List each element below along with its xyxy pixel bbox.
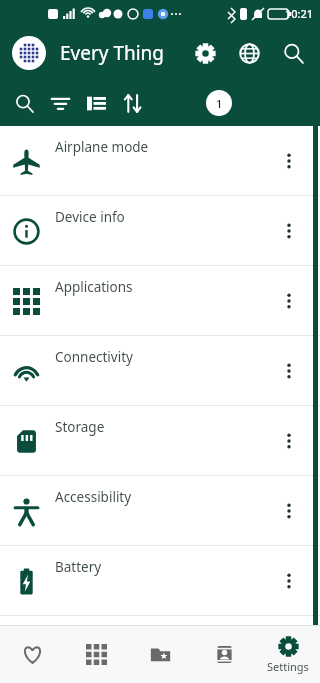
staticText: Battery <box>55 558 102 576</box>
staticText: Connectivity <box>55 348 133 366</box>
button[interactable]: Language <box>232 36 266 70</box>
staticText: Every Thing <box>60 40 165 66</box>
button[interactable]: Connectivity <box>0 336 320 406</box>
button[interactable]: Settings <box>256 626 320 683</box>
button[interactable]: Accessibility <box>0 476 320 546</box>
staticText: Airplane mode <box>55 138 149 156</box>
button[interactable]: Applications <box>0 266 320 336</box>
button[interactable]: Folders <box>128 626 192 683</box>
button[interactable]: Sort <box>114 85 150 121</box>
button[interactable]: Battery <box>0 546 320 616</box>
button[interactable]: More options <box>274 146 304 176</box>
button[interactable]: View <box>78 85 114 121</box>
button[interactable]: More options <box>274 356 304 386</box>
button[interactable]: Contacts <box>192 626 256 683</box>
button[interactable]: Search <box>276 36 310 70</box>
button[interactable]: App icon <box>12 36 46 70</box>
staticText: Device info <box>55 208 125 226</box>
button[interactable]: 1 <box>206 90 232 116</box>
button[interactable]: Storage <box>0 406 320 476</box>
button[interactable]: More options <box>274 566 304 596</box>
staticText: Settings <box>267 659 309 674</box>
button[interactable]: Apps <box>64 626 128 683</box>
button[interactable]: More options <box>274 286 304 316</box>
button[interactable]: More options <box>274 496 304 526</box>
button[interactable]: Airplane mode <box>0 126 320 196</box>
staticText: Storage <box>55 418 105 436</box>
button[interactable]: Settings <box>188 36 222 70</box>
staticText: 1 <box>216 96 223 111</box>
staticText: 10:21 <box>285 6 314 21</box>
button[interactable]: Filter <box>42 85 78 121</box>
button[interactable]: More options <box>274 426 304 456</box>
staticText: Accessibility <box>55 488 132 506</box>
button[interactable]: Device info <box>0 196 320 266</box>
button[interactable]: More options <box>274 216 304 246</box>
staticText: Applications <box>55 278 133 296</box>
button[interactable]: Favorites <box>0 626 64 683</box>
button[interactable]: Search <box>6 85 42 121</box>
